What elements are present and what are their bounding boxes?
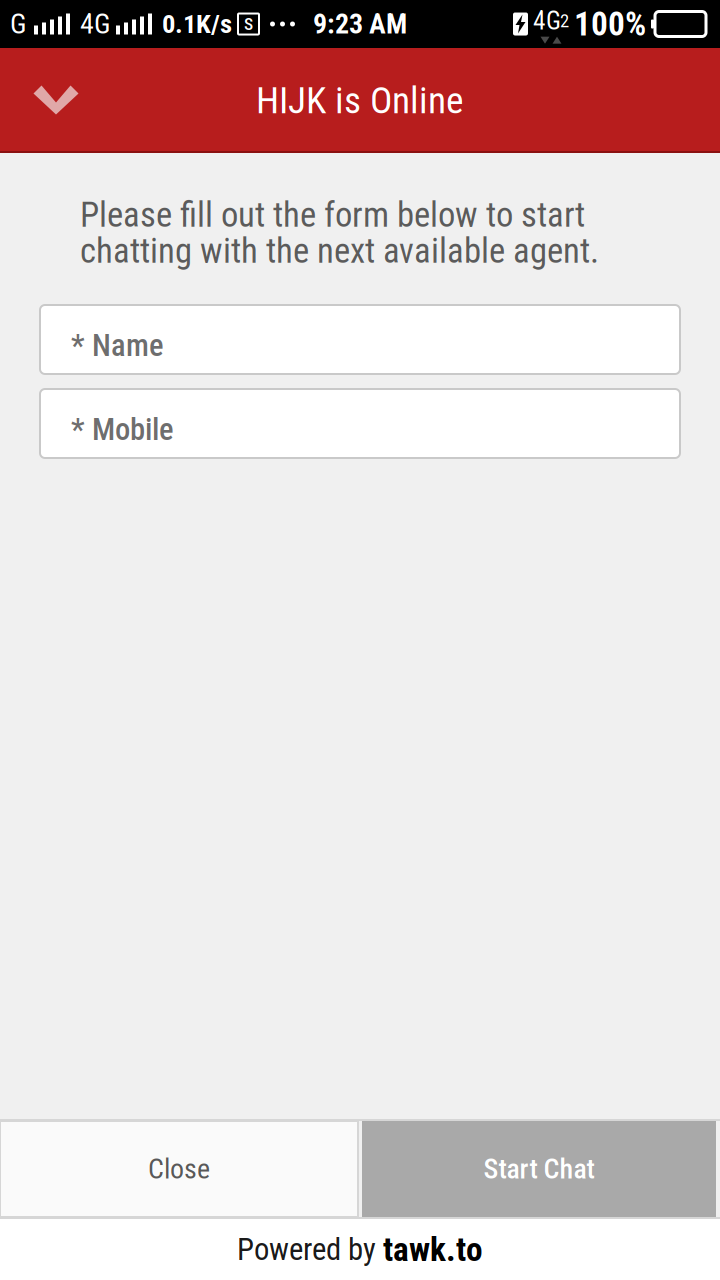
staticText: * Mobile [71,411,174,447]
staticText: 0.1K/s [162,8,232,40]
button[interactable]: Powered by [0,1219,720,1280]
staticText: Powered by [237,1231,383,1267]
staticText: 9:23 AM [313,8,407,40]
button[interactable]: * Mobile [40,389,680,458]
button[interactable]: Minimize chat [0,48,112,153]
staticText: S [244,14,253,34]
staticText: Please fill out the form below to start [80,195,585,235]
button[interactable]: Start Chat [362,1121,716,1217]
staticText: 4G [533,6,561,36]
staticText: 100% [574,4,646,44]
staticText: HIJK is Online [256,79,464,122]
staticText: Close [148,1153,210,1185]
staticText: 2 [560,10,569,32]
staticText: Start Chat [483,1153,594,1185]
button[interactable]: * Name [40,305,680,374]
staticText: G [10,8,27,40]
staticText: chatting with the next available agent. [80,231,599,271]
staticText: * Name [71,327,164,363]
staticText: 4G [80,8,111,40]
staticText: tawk.to [383,1230,483,1269]
button[interactable]: Close [0,1121,358,1217]
